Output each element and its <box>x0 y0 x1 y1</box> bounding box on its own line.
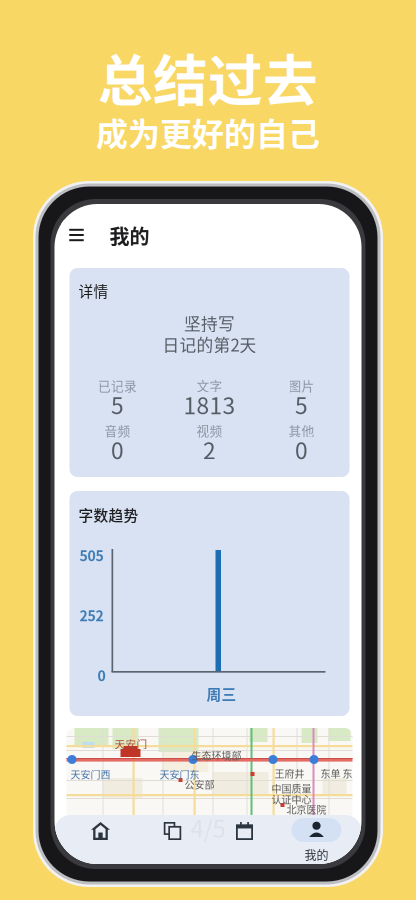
staticText: 音频 <box>104 421 130 439</box>
button[interactable]: 日历 <box>208 817 280 861</box>
staticText: 生态环境部 <box>191 748 241 762</box>
staticText: 总结过去 <box>98 37 318 116</box>
staticText: 中国质量 <box>271 781 311 795</box>
staticText: 505 <box>79 545 103 565</box>
staticText: 北京医院 <box>286 802 326 816</box>
staticText: 天安门 <box>114 736 147 751</box>
staticText: 视频 <box>196 421 222 439</box>
staticText: 其他 <box>288 421 314 439</box>
staticText: 认证中心 <box>271 792 311 806</box>
staticText: 4/5 <box>190 810 225 845</box>
staticText: 252 <box>79 605 103 625</box>
staticText: 图片 <box>288 376 314 394</box>
button[interactable]: 首页 <box>64 817 136 861</box>
button[interactable]: 模板 <box>136 817 208 861</box>
staticText: 0 <box>97 665 105 685</box>
staticText: 东 <box>342 766 352 780</box>
staticText: 2 <box>203 433 216 466</box>
staticText: 0 <box>111 433 124 466</box>
staticText: 坚持写 <box>184 311 235 335</box>
staticText: 公安部 <box>184 777 214 791</box>
staticText: 0 <box>295 433 308 466</box>
staticText: 字数趋势 <box>78 504 138 525</box>
staticText: 我的 <box>304 846 328 863</box>
staticText: 我的 <box>109 221 149 250</box>
staticText: 天安门西 <box>70 767 110 781</box>
staticText: 5 <box>111 388 124 421</box>
staticText: 5 <box>295 388 308 421</box>
staticText: 天安门东 <box>159 767 199 781</box>
staticText: 1813 <box>183 388 235 421</box>
staticText: 东单 <box>320 766 340 780</box>
staticText: 日记的第2天 <box>162 332 256 356</box>
staticText: 文字 <box>196 376 222 394</box>
staticText: 王府井 <box>274 766 304 780</box>
button[interactable]: 我的 <box>280 817 352 861</box>
button[interactable]: 菜单 <box>61 220 91 250</box>
staticText: 成为更好的自己 <box>96 109 320 155</box>
staticText: 周三 <box>206 683 236 704</box>
staticText: 已记录 <box>98 376 137 394</box>
staticText: 详情 <box>78 280 108 301</box>
